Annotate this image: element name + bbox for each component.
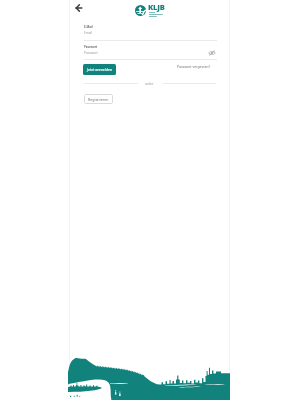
- staticText: Passwort: [84, 51, 98, 55]
- staticText: Email: [84, 31, 93, 35]
- button[interactable]: Show password: [208, 49, 216, 57]
- staticText: KLJB: [148, 2, 165, 12]
- button[interactable]: Jetzt anmelden: [83, 64, 116, 75]
- staticText: Registrieren: [88, 97, 109, 102]
- button[interactable]: Passwort vergessen?: [174, 60, 214, 73]
- staticText: E-Mail: [84, 25, 93, 29]
- staticText: Passwort vergessen?: [177, 64, 211, 69]
- staticText: Passwort: [84, 45, 98, 49]
- button[interactable]: Back: [74, 3, 84, 13]
- staticText: oder: [145, 81, 154, 86]
- button[interactable]: Registrieren: [84, 94, 113, 104]
- staticText: Jetzt anmelden: [87, 67, 113, 72]
